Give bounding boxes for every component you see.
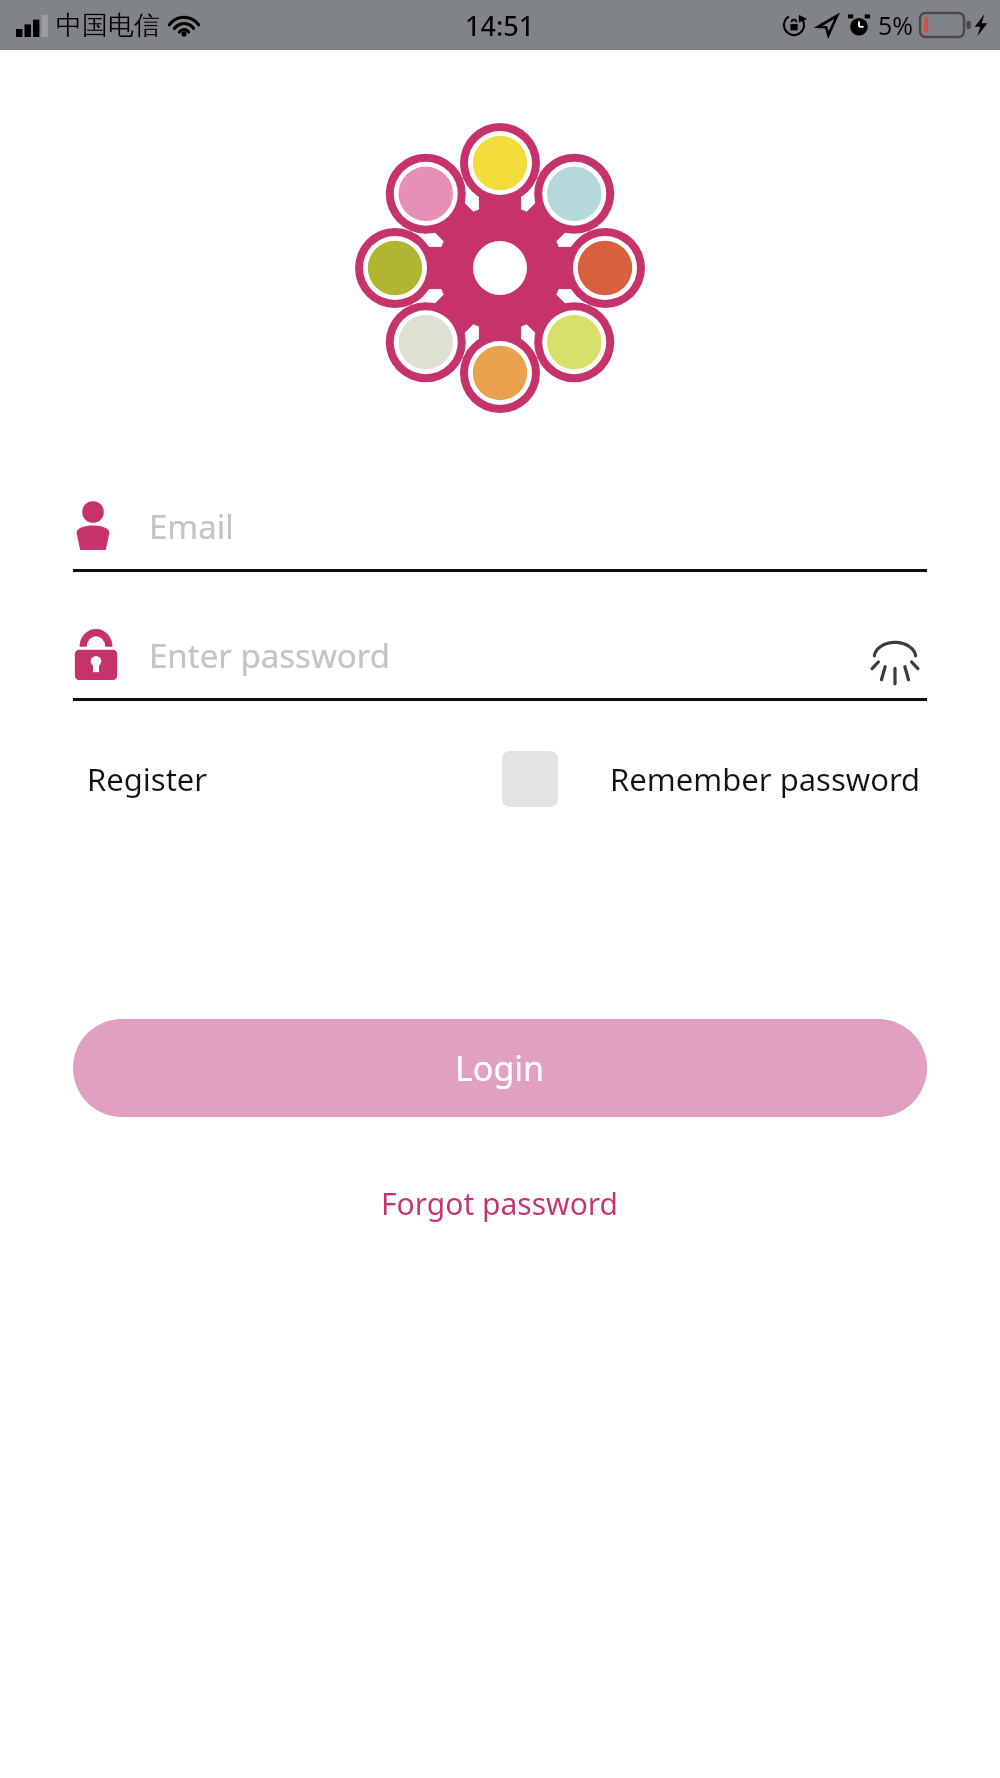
staticText: Enter password [149,633,391,678]
button[interactable]: Show password [863,623,927,687]
button[interactable]: Remember password [502,743,921,815]
staticText: Email [149,504,234,549]
button[interactable]: Register [73,748,222,810]
staticText: Forgot password [381,1183,619,1224]
staticText: 14:51 [465,7,535,44]
staticText: 中国电信 [56,9,160,42]
button[interactable]: Enter password [73,612,927,698]
staticText: 5% [878,8,914,42]
button[interactable]: Login [73,1019,927,1117]
button[interactable]: Email [73,483,927,572]
staticText: Login [455,1045,545,1091]
staticText: Remember password [610,758,921,800]
button[interactable]: Forgot password [367,1175,633,1232]
staticText: Register [87,758,208,800]
